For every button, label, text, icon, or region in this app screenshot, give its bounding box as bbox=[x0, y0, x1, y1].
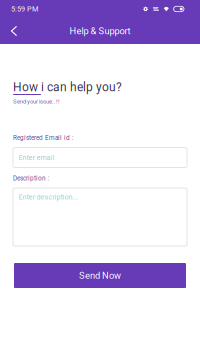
button[interactable]: Back bbox=[0, 18, 28, 44]
staticText: How i can help you? bbox=[13, 80, 122, 94]
staticText: Send Now bbox=[79, 270, 121, 281]
staticText: Enter description... bbox=[19, 193, 79, 201]
button[interactable]: Send Now bbox=[14, 263, 186, 288]
staticText: Help & Support bbox=[69, 25, 130, 36]
staticText: 5:59 PM bbox=[11, 5, 38, 13]
button[interactable]: Enter description... bbox=[13, 188, 187, 246]
staticText: Registered Email id : bbox=[13, 134, 74, 141]
button[interactable]: Enter email bbox=[13, 147, 187, 167]
staticText: Enter email bbox=[19, 153, 55, 162]
staticText: Description : bbox=[13, 174, 50, 182]
staticText: Send your issue..!! bbox=[13, 98, 60, 105]
